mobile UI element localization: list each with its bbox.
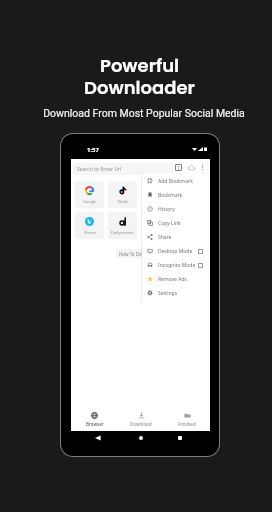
staticText: Tiktok <box>117 199 129 204</box>
button[interactable]: Copy Link <box>142 216 210 230</box>
button[interactable]: Home <box>137 434 145 442</box>
button[interactable]: Settings <box>142 286 210 300</box>
staticText: Finished <box>178 421 196 427</box>
button[interactable]: History <box>142 202 210 216</box>
staticText: Download From Most Popular Social Media <box>43 107 245 119</box>
staticText: Dailymotion <box>111 230 134 235</box>
staticText: Share <box>158 234 172 241</box>
staticText: History <box>158 206 175 213</box>
staticText: Google <box>83 199 97 204</box>
button[interactable]: Dailymotion <box>108 212 137 239</box>
staticText: Desktop Mode <box>158 248 193 255</box>
staticText: Vimeo <box>84 230 96 235</box>
button[interactable]: How To Download Video <box>116 249 174 258</box>
staticText: How To Download Video <box>119 251 171 257</box>
button[interactable]: Incognito Mode <box>142 258 210 272</box>
button[interactable]: Google <box>75 181 104 208</box>
button[interactable]: Add Bookmark <box>142 174 210 188</box>
button[interactable]: Search or Enter Url <box>73 163 173 175</box>
staticText: Add Bookmark <box>158 178 193 185</box>
button[interactable]: Share <box>142 230 210 244</box>
button[interactable]: Finished <box>164 408 210 431</box>
staticText: Search or Enter Url <box>77 166 122 173</box>
button[interactable]: Download <box>118 408 164 431</box>
button[interactable]: Recents <box>176 434 184 442</box>
staticText: Bookmark <box>158 192 183 199</box>
button[interactable]: Home <box>187 163 196 172</box>
staticText: 1 <box>177 165 180 171</box>
staticText: Incognito Mode <box>158 262 196 269</box>
staticText: Copy Link <box>158 220 181 227</box>
button[interactable]: Back <box>94 434 102 442</box>
staticText: Settings <box>158 290 178 297</box>
button[interactable]: Vimeo <box>75 212 104 239</box>
button[interactable]: Remove Ads <box>142 272 210 286</box>
staticText: 1:57 <box>87 146 99 154</box>
button[interactable]: Browser <box>71 408 118 431</box>
button[interactable]: 1 <box>175 164 182 171</box>
button[interactable]: Tiktok <box>108 181 137 208</box>
staticText: Powerful Downloader <box>84 53 195 100</box>
button[interactable]: More options <box>200 163 205 172</box>
staticText: Download <box>130 421 152 427</box>
staticText: Browser <box>86 421 104 427</box>
staticText: Remove Ads <box>158 276 187 283</box>
button[interactable]: Bookmark <box>142 188 210 202</box>
button[interactable]: Desktop Mode <box>142 244 210 258</box>
